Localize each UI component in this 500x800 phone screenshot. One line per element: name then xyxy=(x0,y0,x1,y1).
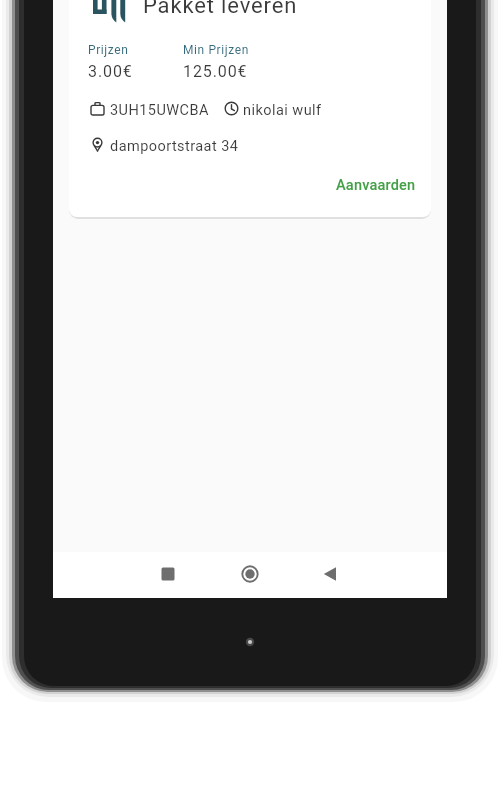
button[interactable]: Aanvaarden xyxy=(293,168,423,202)
button[interactable] xyxy=(236,561,264,589)
staticText: 125.00€ xyxy=(183,62,248,81)
button[interactable] xyxy=(316,561,344,589)
staticText: 3UH15UWCBA xyxy=(110,102,209,119)
staticText: dampoortstraat 34 xyxy=(110,138,239,155)
staticText: Min Prijzen xyxy=(183,43,249,57)
staticText: 3.00€ xyxy=(88,62,133,81)
button[interactable] xyxy=(154,561,182,589)
staticText: nikolai wulf xyxy=(243,102,322,119)
staticText: Pakket leveren xyxy=(143,0,298,19)
button[interactable] xyxy=(69,0,431,217)
staticText: Aanvaarden xyxy=(336,177,416,194)
staticText: Prijzen xyxy=(88,43,129,57)
